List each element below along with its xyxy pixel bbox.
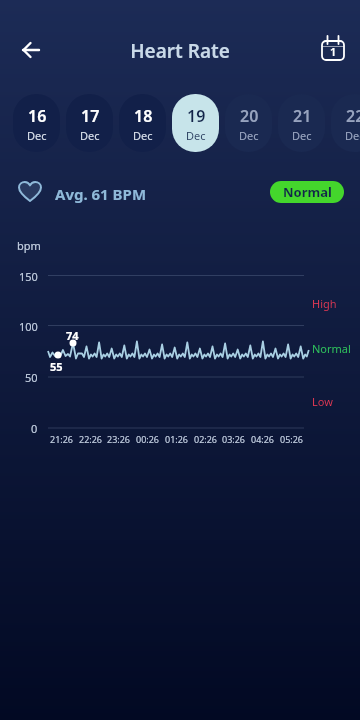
staticText: 04:26: [251, 433, 275, 445]
staticText: Dec: [186, 128, 206, 143]
button[interactable]: 19: [172, 94, 219, 152]
staticText: Dec: [239, 128, 259, 143]
staticText: Dec: [80, 128, 100, 143]
button[interactable]: 1: [318, 33, 348, 63]
staticText: 50: [25, 370, 38, 384]
staticText: 00:26: [136, 433, 160, 445]
staticText: 16: [28, 105, 47, 127]
staticText: 20: [240, 105, 259, 127]
staticText: Low: [312, 394, 333, 409]
staticText: 21:26: [50, 433, 74, 445]
staticText: Avg. 61 BPM: [55, 184, 147, 204]
staticText: 01:26: [165, 433, 189, 445]
staticText: Dec: [292, 128, 312, 143]
staticText: 18: [134, 105, 153, 127]
staticText: 100: [19, 319, 38, 333]
staticText: 23:26: [107, 433, 131, 445]
button[interactable]: Normal: [270, 181, 344, 203]
button[interactable]: 18: [119, 94, 166, 152]
staticText: 22: [346, 105, 360, 127]
staticText: 17: [81, 105, 100, 127]
button[interactable]: 16: [13, 94, 60, 152]
staticText: Dec: [345, 128, 360, 143]
staticText: 1: [330, 44, 337, 59]
button[interactable]: 21: [278, 94, 325, 152]
button[interactable]: 17: [66, 94, 113, 152]
staticText: 22:26: [79, 433, 103, 445]
staticText: bpm: [17, 238, 41, 253]
staticText: 74: [66, 328, 79, 343]
staticText: High: [312, 296, 337, 311]
staticText: 02:26: [194, 433, 218, 445]
staticText: Dec: [133, 128, 153, 143]
button[interactable]: 20: [225, 94, 272, 152]
button[interactable]: [14, 39, 48, 61]
staticText: Normal: [312, 341, 351, 356]
staticText: 150: [19, 269, 38, 283]
button[interactable]: 22: [331, 94, 360, 152]
staticText: 05:26: [280, 433, 304, 445]
staticText: 03:26: [222, 433, 246, 445]
staticText: Normal: [283, 183, 332, 201]
staticText: 21: [293, 105, 312, 127]
staticText: Heart Rate: [0, 38, 360, 64]
staticText: 0: [31, 421, 38, 435]
staticText: Dec: [27, 128, 47, 143]
staticText: 55: [50, 359, 63, 374]
staticText: 19: [187, 105, 206, 127]
